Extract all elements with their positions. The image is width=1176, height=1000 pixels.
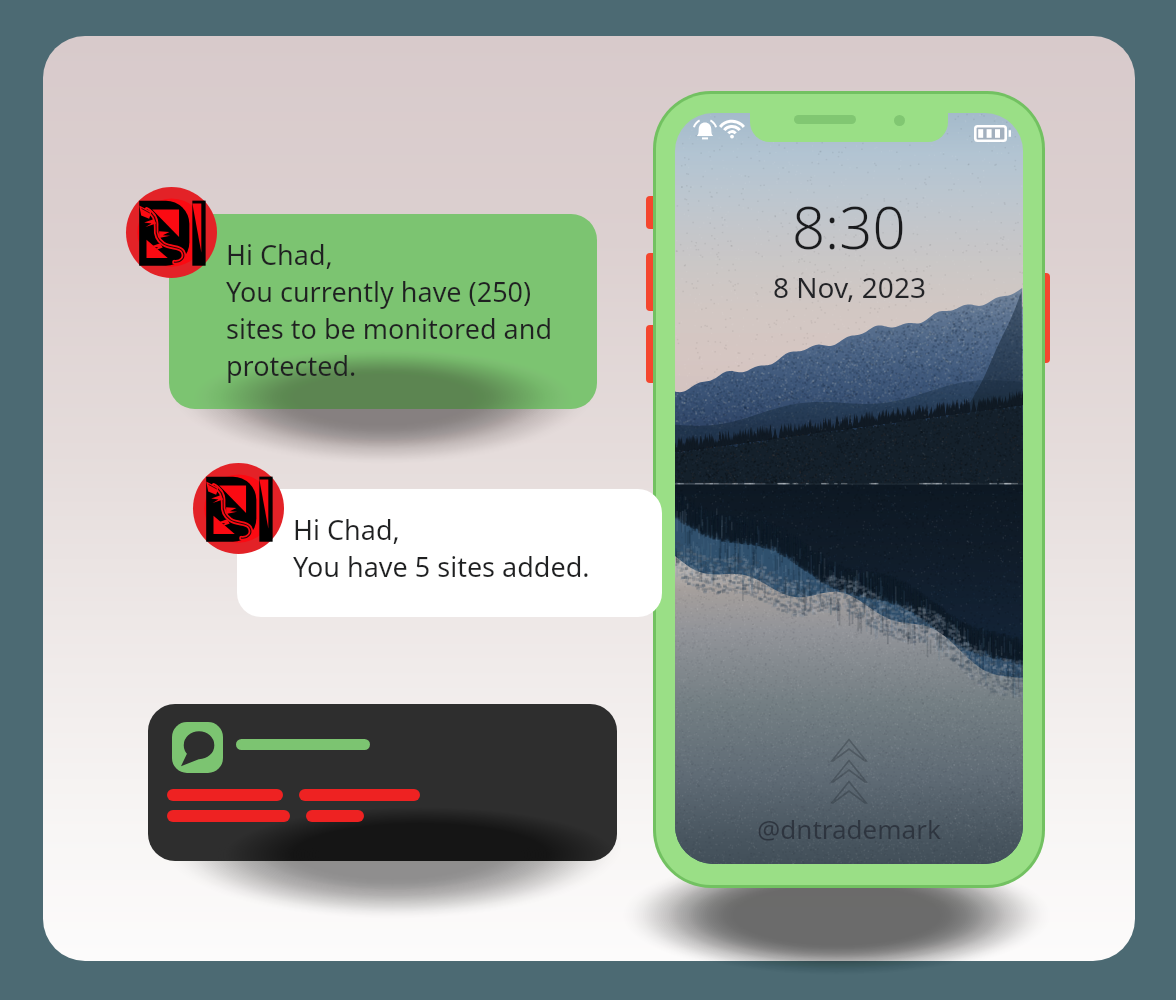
button[interactable]: Messages [172, 722, 223, 773]
staticText: You currently have (250) [226, 273, 532, 310]
staticText: You have 5 sites added. [293, 548, 590, 585]
button[interactable]: Hi Chad, [237, 489, 662, 617]
button[interactable]: Power [1041, 273, 1050, 363]
staticText: sites to be monitored and [226, 310, 552, 347]
staticText: @dntrademark [757, 811, 941, 846]
staticText: Hi Chad, [293, 511, 400, 548]
button[interactable]: Volume up [646, 253, 657, 311]
button[interactable]: DN Trademark avatar [193, 463, 284, 554]
button[interactable]: Mute switch [646, 196, 657, 229]
button[interactable]: Hi Chad, [169, 214, 597, 409]
button[interactable]: Messages [148, 704, 617, 861]
staticText: protected. [226, 347, 357, 384]
staticText: 8 Nov, 2023 [773, 268, 926, 306]
button[interactable]: DN Trademark avatar [126, 187, 217, 278]
button[interactable]: Volume down [646, 325, 657, 383]
staticText: Hi Chad, [226, 236, 333, 273]
staticText: 8:30 [792, 187, 906, 266]
